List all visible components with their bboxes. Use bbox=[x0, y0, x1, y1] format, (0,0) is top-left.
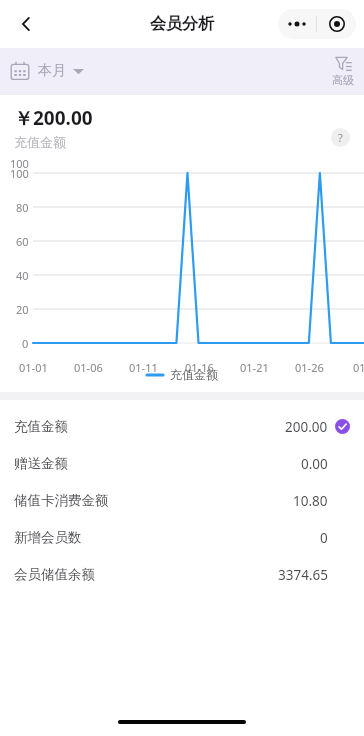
button[interactable]: 充值金额 bbox=[0, 408, 364, 445]
button[interactable]: 赠送金额 bbox=[0, 445, 364, 482]
staticText: 0 bbox=[320, 529, 328, 547]
staticText: 本月 bbox=[38, 62, 66, 80]
button[interactable]: Back bbox=[6, 4, 46, 44]
staticText: 60 bbox=[16, 234, 29, 249]
staticText: 高级 bbox=[332, 73, 354, 87]
button[interactable]: 高级 bbox=[332, 55, 354, 87]
staticText: 0.00 bbox=[301, 455, 328, 473]
staticText: 充值金额 bbox=[14, 134, 66, 150]
staticText: 会员储值余额 bbox=[14, 566, 95, 583]
staticText: ￥200.00 bbox=[14, 105, 93, 131]
staticText: 01-01 bbox=[19, 360, 48, 375]
staticText: 200.00 bbox=[285, 418, 328, 436]
staticText: 100 bbox=[10, 156, 29, 171]
staticText: 01-21 bbox=[240, 360, 269, 375]
staticText: 会员分析 bbox=[150, 14, 214, 34]
staticText: 储值卡消费金额 bbox=[14, 492, 109, 509]
staticText: 3374.65 bbox=[278, 566, 328, 584]
button[interactable]: More bbox=[278, 9, 316, 39]
button[interactable]: 会员储值余额 bbox=[0, 556, 364, 593]
staticText: 01-11 bbox=[129, 360, 158, 375]
button[interactable]: 本月 bbox=[10, 61, 84, 81]
staticText: 80 bbox=[16, 200, 29, 215]
staticText: 0 bbox=[22, 336, 29, 351]
staticText: 充值金额 bbox=[170, 367, 218, 382]
staticText: 赠送金额 bbox=[14, 455, 68, 472]
button[interactable]: 新增会员数 bbox=[0, 519, 364, 556]
staticText: 20 bbox=[16, 302, 29, 317]
button[interactable]: Help bbox=[331, 128, 350, 147]
staticText: 100 bbox=[10, 166, 29, 181]
button[interactable]: Close bbox=[317, 9, 356, 39]
staticText: 10.80 bbox=[293, 492, 328, 510]
staticText: 40 bbox=[16, 268, 29, 283]
staticText: 新增会员数 bbox=[14, 529, 82, 546]
staticText: ? bbox=[338, 130, 343, 145]
button[interactable]: 储值卡消费金额 bbox=[0, 482, 364, 519]
staticText: 01-16 bbox=[185, 360, 214, 375]
staticText: 01-3 bbox=[353, 360, 364, 375]
staticText: 充值金额 bbox=[14, 418, 68, 435]
staticText: 01-26 bbox=[295, 360, 324, 375]
staticText: 01-06 bbox=[74, 360, 103, 375]
